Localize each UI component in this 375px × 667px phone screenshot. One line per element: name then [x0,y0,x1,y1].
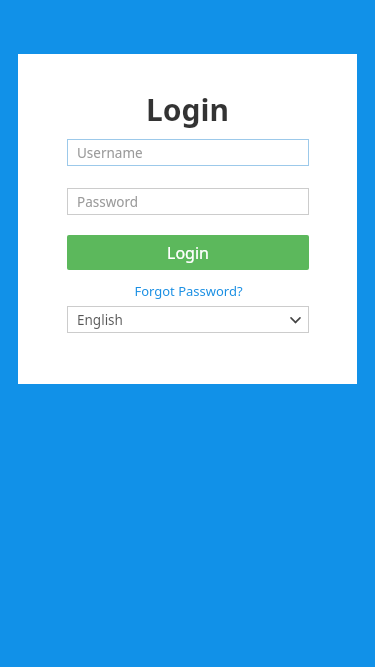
staticText: Username [77,144,143,162]
staticText: English [77,311,123,329]
button[interactable]: Select language [67,306,309,333]
button[interactable]: Login [67,235,309,270]
button[interactable]: Username [67,139,309,166]
button[interactable]: Forgot Password? [67,282,309,300]
button[interactable]: Password [67,188,309,215]
staticText: Login [146,89,229,130]
staticText: Forgot Password? [134,282,243,300]
staticText: Password [77,193,139,211]
staticText: Login [167,242,209,264]
